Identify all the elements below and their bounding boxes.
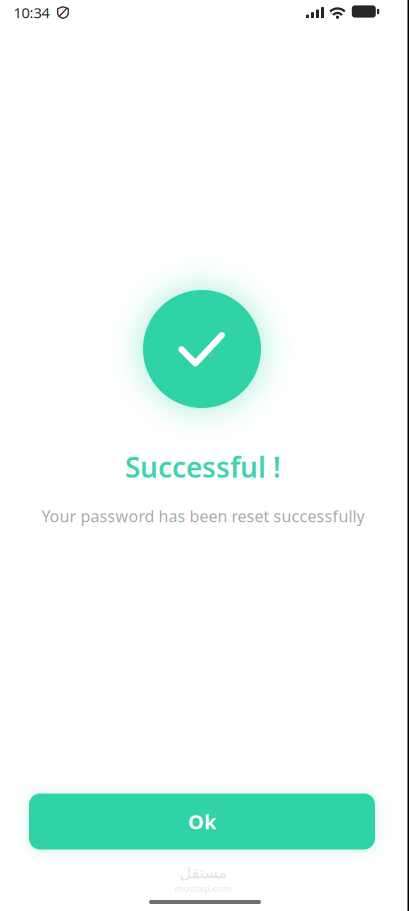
staticText: 10:34 <box>13 3 49 22</box>
staticText: Your password has been reset successfull… <box>41 505 364 527</box>
button[interactable]: Ok <box>29 793 375 849</box>
staticText: Ok <box>188 808 216 835</box>
staticText: mostaql.com <box>174 882 231 894</box>
staticText: مستقل <box>179 864 227 882</box>
staticText: Successful ! <box>125 448 281 486</box>
